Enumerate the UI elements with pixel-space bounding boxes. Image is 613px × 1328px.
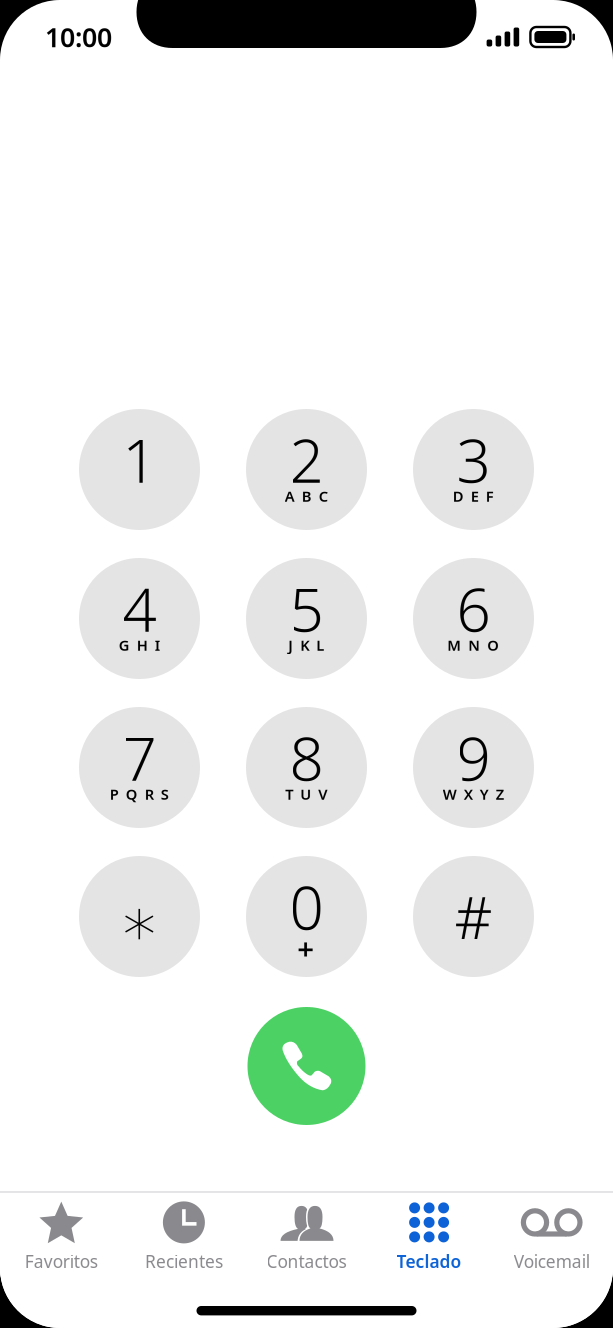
staticText: 8 — [289, 718, 323, 797]
staticText: 4 — [122, 569, 156, 648]
staticText: ABC — [285, 486, 339, 506]
staticText: TUV — [285, 784, 338, 804]
staticText: PQRS — [110, 784, 180, 804]
button[interactable]: 2 — [246, 409, 367, 530]
staticText: Contactos — [266, 1250, 346, 1273]
button[interactable]: Teclado — [368, 1193, 490, 1277]
staticText: 10:00 — [45, 19, 112, 55]
staticText: JKL — [288, 635, 335, 655]
button[interactable]: 7 — [79, 707, 200, 828]
staticText: Favoritos — [25, 1250, 98, 1273]
staticText: MNO — [447, 635, 510, 655]
staticText: 0 — [289, 867, 323, 946]
button[interactable]: Voicemail — [490, 1193, 613, 1277]
staticText: Voicemail — [514, 1250, 590, 1273]
staticText: GHI — [119, 635, 171, 655]
button[interactable]: # — [413, 856, 534, 977]
staticText: DEF — [453, 486, 505, 506]
staticText: 7 — [122, 718, 156, 797]
staticText: 2 — [289, 420, 323, 499]
staticText: 1 — [122, 420, 156, 499]
button[interactable]: Llamar — [247, 1007, 365, 1125]
button[interactable]: 0 — [246, 856, 367, 977]
button[interactable]: Contactos — [245, 1193, 368, 1277]
button[interactable]: 1 — [79, 409, 200, 530]
staticText: 5 — [289, 569, 323, 648]
staticText: ∗ — [118, 884, 160, 960]
staticText: Recientes — [145, 1250, 223, 1273]
staticText: 9 — [456, 718, 490, 797]
button[interactable]: ∗ — [79, 856, 200, 977]
button[interactable]: 3 — [413, 409, 534, 530]
staticText: 6 — [456, 569, 490, 648]
button[interactable]: 4 — [79, 558, 200, 679]
button[interactable]: Recientes — [123, 1193, 245, 1277]
button[interactable]: 9 — [413, 707, 534, 828]
button[interactable]: 6 — [413, 558, 534, 679]
button[interactable]: 8 — [246, 707, 367, 828]
staticText: + — [297, 928, 322, 967]
staticText: # — [454, 877, 492, 955]
staticText: Teclado — [397, 1250, 462, 1273]
button[interactable]: 5 — [246, 558, 367, 679]
staticText: 3 — [456, 420, 490, 499]
staticText: WXYZ — [443, 784, 515, 804]
button[interactable]: Favoritos — [0, 1193, 123, 1277]
